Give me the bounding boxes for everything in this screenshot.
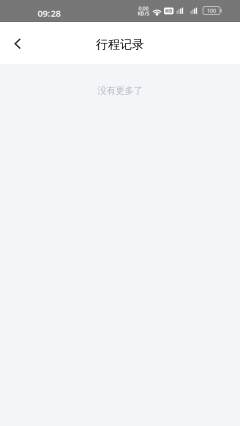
staticText: 100 [207, 7, 216, 14]
staticText: 没有更多了 [97, 85, 142, 96]
staticText: KB/S [137, 10, 149, 17]
button[interactable]: Back [2, 23, 34, 65]
staticText: 09:28 [37, 7, 60, 19]
staticText: 0.00 [138, 5, 148, 12]
staticText: 行程记录 [96, 37, 144, 52]
